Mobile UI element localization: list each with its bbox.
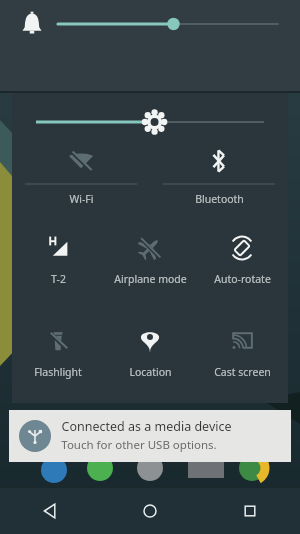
staticText: T-2 bbox=[51, 272, 66, 286]
button[interactable]: Location bbox=[104, 310, 196, 403]
button[interactable]: Auto-rotate bbox=[196, 217, 288, 310]
button[interactable]: Connected as a media device bbox=[9, 410, 291, 462]
staticText: Touch for other USB options. bbox=[61, 437, 217, 453]
button[interactable]: PRIORITY bbox=[107, 54, 203, 145]
staticText: ALL bbox=[233, 92, 257, 108]
staticText: Flashlight bbox=[34, 365, 82, 379]
button[interactable]: T-2 bbox=[12, 217, 104, 310]
button[interactable]: Bluetooth bbox=[150, 139, 288, 217]
staticText: Cast screen bbox=[214, 365, 271, 379]
button[interactable]: Volume bbox=[58, 17, 278, 31]
button[interactable]: Brightness bbox=[12, 93, 288, 139]
staticText: Connected as a media device bbox=[61, 418, 232, 435]
button[interactable]: NONE bbox=[24, 54, 107, 145]
staticText: PRIORITY bbox=[125, 92, 185, 108]
staticText: Auto-rotate bbox=[214, 272, 271, 286]
button[interactable]: Wi-Fi bbox=[12, 139, 150, 217]
staticText: NONE bbox=[47, 92, 84, 108]
button[interactable]: Notifications bbox=[18, 10, 46, 38]
button[interactable]: Airplane mode bbox=[104, 217, 196, 310]
button[interactable]: Flashlight bbox=[12, 310, 104, 403]
button[interactable]: Recents bbox=[200, 488, 300, 534]
button[interactable]: Home bbox=[100, 488, 200, 534]
button[interactable]: Back bbox=[0, 488, 100, 534]
staticText: Airplane mode bbox=[114, 272, 187, 286]
button[interactable]: ALL bbox=[203, 54, 286, 145]
staticText: Wi-Fi bbox=[69, 192, 94, 206]
button[interactable]: Cast screen bbox=[196, 310, 288, 403]
staticText: Location bbox=[129, 365, 172, 379]
staticText: Bluetooth bbox=[195, 192, 244, 206]
